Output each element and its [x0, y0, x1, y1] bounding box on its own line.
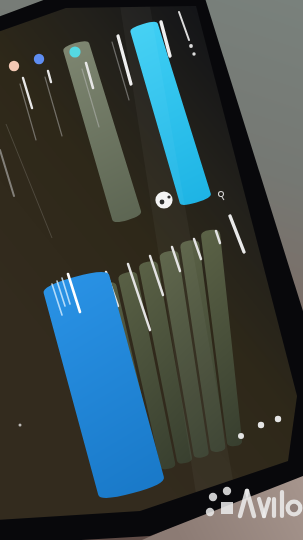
- button[interactable]: Samsung tablet showing the Settings app: [0, 0, 303, 540]
